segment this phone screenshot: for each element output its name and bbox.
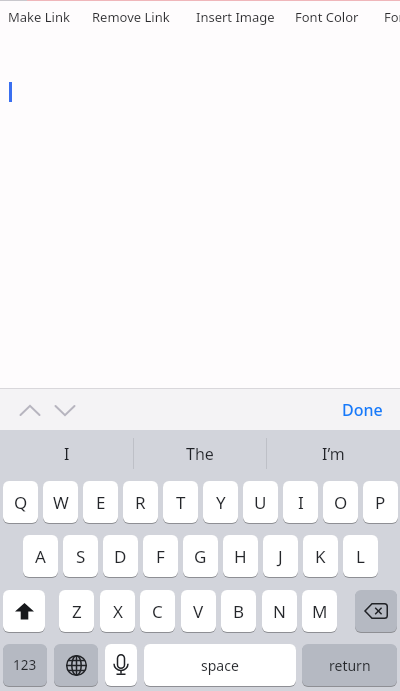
button[interactable]: F (143, 535, 178, 577)
button[interactable]: Make Link (8, 7, 75, 27)
button[interactable]: D (103, 535, 138, 577)
staticText: X (113, 600, 123, 623)
button[interactable]: space (144, 644, 296, 686)
button[interactable]: B (221, 590, 256, 632)
button[interactable]: N (262, 590, 297, 632)
button[interactable]: L (343, 535, 378, 577)
staticText: 123 (13, 656, 37, 674)
button[interactable] (54, 644, 98, 686)
staticText: E (96, 491, 106, 514)
button[interactable]: Insert Image (196, 7, 284, 27)
staticText: Remove Link (92, 8, 170, 26)
button[interactable]: X (100, 590, 135, 632)
button[interactable]: H (223, 535, 258, 577)
button[interactable]: J (263, 535, 298, 577)
button[interactable]: E (83, 481, 118, 523)
staticText: I (298, 491, 304, 514)
staticText: Font Color (295, 8, 359, 26)
button[interactable] (49, 396, 81, 424)
button[interactable]: Y (203, 481, 238, 523)
staticText: I (64, 443, 70, 465)
button[interactable]: G (183, 535, 218, 577)
button[interactable]: S (63, 535, 98, 577)
staticText: A (35, 545, 46, 568)
staticText: Insert Image (196, 8, 275, 26)
staticText: Make Link (8, 8, 70, 26)
staticText: C (152, 600, 163, 623)
staticText: L (356, 545, 365, 568)
button[interactable]: U (243, 481, 278, 523)
button[interactable]: I’m (266, 432, 400, 476)
button[interactable]: I (283, 481, 318, 523)
staticText: B (233, 600, 245, 623)
button[interactable]: M (302, 590, 337, 632)
staticText: U (254, 491, 267, 514)
button[interactable]: P (363, 481, 398, 523)
button[interactable]: Done (332, 390, 392, 430)
staticText: R (135, 491, 146, 514)
staticText: Q (14, 491, 28, 514)
staticText: I’m (322, 443, 345, 465)
button[interactable]: O (323, 481, 358, 523)
staticText: F (156, 545, 165, 568)
button[interactable] (3, 590, 45, 632)
staticText: V (193, 600, 204, 623)
staticText: Y (216, 491, 226, 514)
button[interactable]: Q (3, 481, 38, 523)
button[interactable] (355, 590, 397, 632)
button[interactable]: Z (59, 590, 94, 632)
staticText: K (315, 545, 326, 568)
button[interactable]: W (43, 481, 78, 523)
staticText: S (76, 545, 86, 568)
button[interactable]: return (302, 644, 397, 686)
staticText: N (273, 600, 286, 623)
button[interactable]: A (23, 535, 58, 577)
button[interactable]: V (181, 590, 216, 632)
button[interactable]: Remove Link (92, 7, 173, 27)
button[interactable]: Font (384, 7, 400, 27)
staticText: W (53, 491, 69, 514)
staticText: The (186, 443, 214, 465)
staticText: D (114, 545, 127, 568)
button[interactable] (14, 396, 46, 424)
staticText: G (194, 545, 207, 568)
button[interactable]: K (303, 535, 338, 577)
button[interactable]: T (163, 481, 198, 523)
button[interactable]: R (123, 481, 158, 523)
button[interactable]: Font Color (295, 7, 369, 27)
button[interactable]: 123 (3, 644, 47, 686)
staticText: Done (342, 399, 383, 421)
staticText: Font (384, 8, 400, 26)
staticText: T (176, 491, 186, 514)
staticText: O (334, 491, 348, 514)
button[interactable]: I (0, 432, 133, 476)
staticText: P (375, 491, 386, 514)
button[interactable]: The (133, 432, 266, 476)
staticText: Z (72, 600, 82, 623)
staticText: H (234, 545, 247, 568)
staticText: space (201, 656, 239, 675)
button[interactable] (105, 644, 137, 686)
staticText: J (278, 545, 283, 568)
staticText: return (329, 656, 371, 675)
staticText: M (312, 600, 328, 623)
button[interactable]: C (140, 590, 175, 632)
